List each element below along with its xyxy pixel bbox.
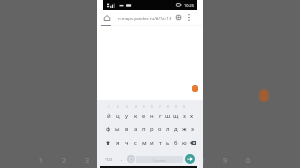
staticText: д	[174, 125, 178, 133]
button[interactable]: ?123	[103, 150, 114, 168]
staticText: 2	[62, 156, 67, 166]
staticText: 5	[143, 105, 145, 109]
staticText: б	[174, 139, 178, 147]
staticText: л	[166, 125, 170, 133]
staticText: 0	[183, 105, 185, 109]
staticText: в	[125, 125, 129, 133]
staticText: х	[190, 112, 194, 120]
staticText: Русский	[153, 158, 166, 162]
button[interactable]: и	[148, 136, 156, 150]
staticText: 4	[108, 156, 113, 166]
button[interactable]: 5	[140, 107, 148, 122]
staticText: и	[150, 139, 154, 147]
button[interactable]: 4	[131, 107, 140, 122]
staticText: м	[142, 139, 147, 147]
staticText: ь	[166, 139, 170, 147]
staticText: 0	[246, 156, 251, 166]
staticText: п	[142, 125, 146, 133]
staticText: ?123	[105, 157, 113, 161]
staticText: н	[150, 112, 154, 120]
button[interactable]: с	[131, 136, 140, 150]
staticText: ю	[182, 139, 187, 147]
button[interactable]: Backspace	[188, 136, 198, 150]
button[interactable]: ю	[180, 136, 188, 150]
staticText: а	[134, 125, 138, 133]
staticText: 5	[131, 156, 136, 166]
button[interactable]: 6	[148, 107, 156, 122]
staticText: з	[183, 112, 186, 120]
staticText: 7	[177, 156, 182, 166]
button[interactable]: х	[188, 107, 196, 122]
staticText: 7	[159, 105, 161, 109]
staticText: я	[116, 139, 120, 147]
button[interactable]: ф	[104, 122, 113, 136]
staticText: 9	[175, 105, 177, 109]
button[interactable]: д	[172, 122, 180, 136]
staticText: 3	[126, 105, 128, 109]
staticText: ,	[121, 156, 123, 162]
staticText: й	[107, 112, 111, 120]
staticText: 4	[135, 105, 137, 109]
button[interactable]: б	[172, 136, 180, 150]
staticText: 3	[85, 156, 90, 166]
button[interactable]: 2	[113, 107, 122, 122]
button[interactable]: л	[164, 122, 172, 136]
button[interactable]: ы	[113, 122, 122, 136]
button[interactable]: Shift	[102, 136, 113, 150]
staticText: 8	[200, 156, 205, 166]
staticText: т	[159, 139, 162, 147]
button[interactable]: Tabs	[173, 10, 183, 25]
button[interactable]: р	[148, 122, 156, 136]
staticText: ф	[106, 125, 111, 133]
staticText: 10:25	[184, 3, 194, 8]
button[interactable]: э	[188, 122, 196, 136]
button[interactable]: а	[131, 122, 140, 136]
staticText: n.maps.yandex.ru/#/?z=13	[118, 15, 172, 21]
staticText: о	[158, 125, 162, 133]
staticText: е	[142, 112, 146, 120]
button[interactable]: 8	[164, 107, 172, 122]
button[interactable]: 1	[104, 107, 113, 122]
staticText: 1	[108, 105, 110, 109]
button[interactable]: о	[156, 122, 164, 136]
button[interactable]: Home	[102, 10, 112, 25]
button[interactable]: я	[113, 136, 122, 150]
staticText: э	[191, 125, 194, 133]
staticText: с	[134, 139, 137, 147]
staticText: 1	[39, 156, 44, 166]
button[interactable]: ч	[122, 136, 131, 150]
staticText: 6	[151, 105, 153, 109]
button[interactable]: т	[156, 136, 164, 150]
button[interactable]: 3	[122, 107, 131, 122]
button[interactable]: Space	[136, 156, 183, 163]
button[interactable]: ь	[164, 136, 172, 150]
staticText: 9	[223, 156, 228, 166]
button[interactable]: м	[140, 136, 148, 150]
button[interactable]: в	[122, 122, 131, 136]
staticText: ы	[115, 125, 120, 133]
staticText: щ	[173, 112, 179, 120]
staticText: ж	[182, 125, 187, 133]
button[interactable]: 0	[180, 107, 188, 122]
staticText: 2	[117, 105, 119, 109]
staticText: р	[150, 125, 154, 133]
staticText: ш	[165, 112, 171, 120]
staticText: у	[125, 112, 129, 120]
staticText: к	[134, 112, 138, 120]
staticText: 8	[167, 105, 169, 109]
button[interactable]: Go	[185, 154, 195, 164]
button[interactable]: More options	[184, 10, 193, 25]
button[interactable]: Emoji	[127, 155, 135, 163]
staticText: ц	[116, 112, 120, 120]
staticText: 6	[154, 156, 159, 166]
button[interactable]: ж	[180, 122, 188, 136]
button[interactable]: ,	[118, 150, 125, 168]
staticText: ч	[125, 139, 129, 147]
staticText: г	[159, 112, 162, 120]
button[interactable]: п	[140, 122, 148, 136]
button[interactable]: 7	[156, 107, 164, 122]
button[interactable]: 9	[172, 107, 180, 122]
